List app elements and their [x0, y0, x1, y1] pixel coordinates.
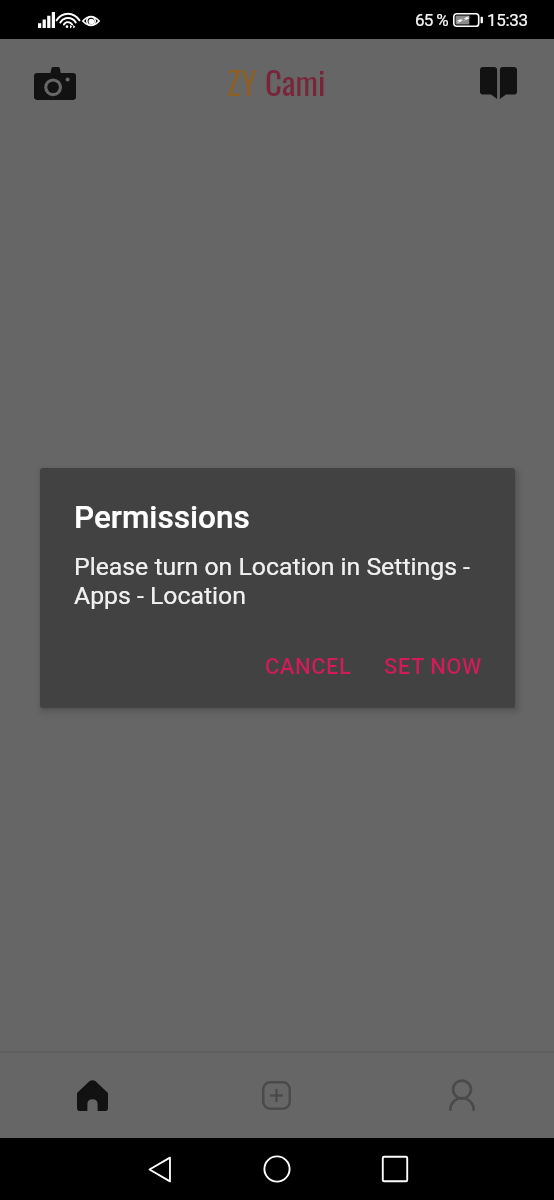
staticText: Permissions [74, 499, 250, 536]
staticText: Please turn on Location in Settings - Ap… [74, 552, 470, 610]
button[interactable]: SET NOW [376, 648, 490, 686]
button[interactable]: CANCEL [257, 648, 360, 686]
staticText: ZY [227, 57, 265, 106]
button[interactable]: Camera [27, 55, 83, 111]
button[interactable]: Profile [369, 1053, 554, 1138]
button[interactable]: Back [129, 1138, 193, 1200]
staticText: 65 % [415, 10, 448, 30]
staticText: 15:33 [487, 10, 528, 30]
button[interactable]: Home [0, 1053, 184, 1138]
button[interactable]: Home [245, 1138, 309, 1200]
staticText: CANCEL [265, 654, 352, 680]
staticText: Cami [265, 57, 326, 106]
staticText: SET NOW [384, 654, 482, 680]
button[interactable]: Recent apps [363, 1138, 427, 1200]
button[interactable]: Add new [184, 1053, 369, 1138]
button[interactable]: Open book [471, 56, 525, 110]
